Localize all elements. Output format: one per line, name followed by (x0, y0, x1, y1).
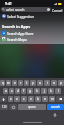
staticText: Safari Suggestion (7, 14, 35, 18)
staticText: e (14, 81, 16, 85)
staticText: k (50, 89, 52, 93)
button[interactable]: j (41, 88, 47, 94)
staticText: o (53, 81, 55, 85)
staticText: x (16, 97, 18, 101)
button[interactable]: g (27, 88, 33, 94)
staticText: z (10, 97, 12, 101)
staticText: b (37, 97, 39, 101)
button[interactable]: Cancel (52, 7, 63, 12)
staticText: t (26, 81, 28, 85)
staticText: Search Maps (7, 37, 27, 41)
staticText: d (17, 89, 19, 93)
button[interactable]: v (28, 96, 34, 102)
button[interactable]: Dictate (53, 113, 57, 117)
staticText: Search App Store (7, 31, 34, 35)
button[interactable]: Clear text (47, 8, 50, 11)
button[interactable]: safari search (1, 7, 51, 12)
staticText: f (23, 89, 25, 93)
button[interactable]: b (35, 96, 41, 102)
button[interactable]: h (34, 88, 40, 94)
button[interactable]: e (12, 80, 17, 86)
button[interactable]: k (48, 88, 54, 94)
button[interactable]: 123 (0, 104, 8, 110)
staticText: space (28, 105, 36, 109)
staticText: 9:41 (5, 1, 12, 6)
staticText: q (2, 81, 4, 85)
button[interactable]: w (6, 80, 11, 86)
staticText: v (30, 97, 32, 101)
button[interactable]: d (15, 88, 20, 94)
staticText: p (60, 81, 62, 85)
staticText: y (32, 81, 34, 85)
staticText: m (51, 97, 54, 101)
button[interactable]: x (14, 96, 20, 102)
button[interactable]: t (24, 80, 29, 86)
button[interactable]: z (8, 96, 13, 102)
button[interactable]: Shift (0, 96, 7, 102)
button[interactable]: u (37, 80, 43, 86)
button[interactable]: n (42, 96, 48, 102)
button[interactable]: y (30, 80, 36, 86)
staticText: s (11, 89, 13, 93)
button[interactable]: a (3, 88, 8, 94)
button[interactable]: c (21, 96, 27, 102)
staticText: a (5, 89, 7, 93)
button[interactable]: f (21, 88, 26, 94)
button[interactable]: r (18, 80, 23, 86)
staticText: Search in Apps (2, 24, 31, 29)
button[interactable]: search (47, 104, 64, 110)
button[interactable]: q (0, 80, 5, 86)
button[interactable]: Safari Suggestion (0, 13, 64, 19)
button[interactable]: Search Maps (0, 36, 64, 42)
staticText: n (44, 97, 46, 101)
button[interactable]: Emoji keyboard (9, 104, 17, 110)
staticText: g (29, 89, 31, 93)
button[interactable]: Search App Store (0, 30, 64, 36)
staticText: j (44, 89, 45, 93)
staticText: i (47, 81, 48, 85)
staticText: l (58, 89, 59, 93)
staticText: h (36, 89, 38, 93)
staticText: 123 (2, 105, 7, 109)
button[interactable]: o (51, 80, 57, 86)
button[interactable]: Backspace (56, 96, 64, 102)
staticText: search (51, 105, 60, 109)
staticText: r (20, 81, 22, 85)
button[interactable]: i (44, 80, 50, 86)
button[interactable]: m (49, 96, 55, 102)
staticText: safari search (6, 8, 25, 12)
staticText: u (39, 81, 41, 85)
button[interactable]: p (58, 80, 64, 86)
button[interactable]: l (55, 88, 61, 94)
button[interactable]: space (18, 104, 46, 110)
button[interactable]: s (9, 88, 14, 94)
staticText: Cancel (52, 8, 63, 12)
staticText: c (23, 97, 25, 101)
staticText: w (7, 81, 10, 85)
